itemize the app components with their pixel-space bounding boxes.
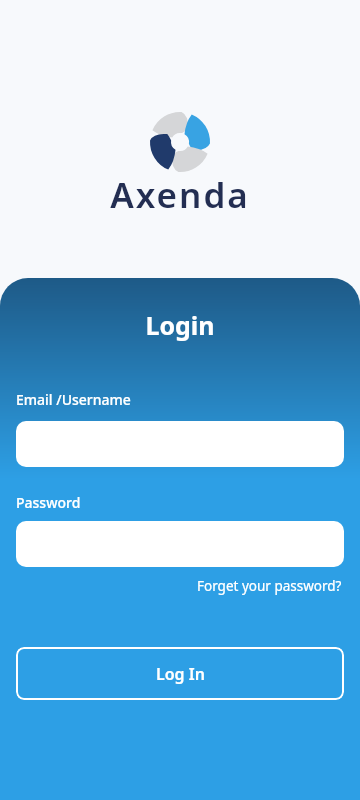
button[interactable]: [16, 521, 344, 567]
staticText: Axenda: [0, 171, 360, 219]
button[interactable]: Forget your password?: [197, 577, 342, 595]
staticText: Password: [16, 493, 81, 512]
button[interactable]: [16, 421, 344, 467]
button[interactable]: Log In: [16, 647, 344, 700]
staticText: Email /Username: [16, 390, 131, 409]
staticText: Forget your password?: [197, 577, 342, 595]
staticText: Log In: [156, 663, 205, 685]
staticText: Login: [0, 308, 360, 342]
